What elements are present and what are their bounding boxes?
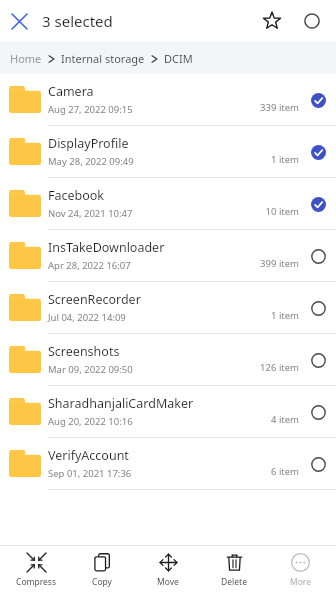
button[interactable]: Delete bbox=[204, 546, 264, 595]
staticText: May 28, 2022 09:49 bbox=[48, 155, 134, 168]
button[interactable]: Not selected bbox=[303, 345, 333, 375]
staticText: 126 item bbox=[260, 361, 299, 374]
button[interactable]: Select all bbox=[292, 1, 332, 41]
staticText: Compress bbox=[16, 576, 56, 588]
staticText: Apr 28, 2022 16:07 bbox=[48, 259, 131, 272]
staticText: VerifyAccount bbox=[48, 447, 129, 464]
button[interactable]: Not selected bbox=[303, 397, 333, 427]
staticText: 6 item bbox=[270, 465, 299, 478]
staticText: 1 item bbox=[270, 309, 299, 322]
button[interactable]: SharadhanjaliCardMaker bbox=[0, 386, 336, 437]
button[interactable]: Not selected bbox=[303, 241, 333, 271]
staticText: Delete bbox=[221, 576, 247, 588]
staticText: ScreenRecorder bbox=[48, 291, 141, 308]
staticText: 339 item bbox=[260, 101, 299, 114]
staticText: Move bbox=[157, 576, 179, 588]
button[interactable]: ScreenRecorder bbox=[0, 282, 336, 333]
button[interactable]: Facebook bbox=[0, 178, 336, 229]
button[interactable]: Selected bbox=[303, 137, 333, 167]
staticText: Facebook bbox=[48, 187, 105, 204]
button[interactable]: Selected bbox=[303, 85, 333, 115]
staticText: Mar 09, 2022 09:50 bbox=[48, 363, 133, 376]
button[interactable]: Compress bbox=[6, 546, 66, 595]
staticText: DCIM bbox=[164, 51, 193, 66]
staticText: 399 item bbox=[260, 257, 299, 270]
staticText: DisplayProfile bbox=[48, 135, 129, 152]
button[interactable]: Internal storage bbox=[61, 51, 145, 66]
staticText: Screenshots bbox=[48, 343, 120, 360]
button[interactable]: More bbox=[270, 546, 330, 595]
button[interactable]: Not selected bbox=[303, 449, 333, 479]
staticText: Sep 01, 2021 17:36 bbox=[48, 467, 132, 480]
button[interactable]: VerifyAccount bbox=[0, 438, 336, 489]
staticText: Camera bbox=[48, 83, 94, 100]
staticText: SharadhanjaliCardMaker bbox=[48, 395, 194, 412]
staticText: Internal storage bbox=[61, 51, 145, 66]
staticText: 3 selected bbox=[42, 11, 113, 31]
button[interactable]: Selected bbox=[303, 189, 333, 219]
staticText: Copy bbox=[92, 576, 112, 588]
button[interactable]: Favorite bbox=[252, 1, 292, 41]
staticText: 10 item bbox=[265, 205, 299, 218]
staticText: Aug 27, 2022 09:15 bbox=[48, 103, 133, 116]
button[interactable]: DisplayProfile bbox=[0, 126, 336, 177]
staticText: InsTakeDownloader bbox=[48, 239, 165, 256]
staticText: Home bbox=[10, 51, 42, 66]
button[interactable]: Home bbox=[10, 51, 42, 66]
staticText: More bbox=[290, 576, 311, 588]
button[interactable]: Close selection bbox=[0, 2, 38, 40]
button[interactable]: InsTakeDownloader bbox=[0, 230, 336, 281]
button[interactable]: Move bbox=[138, 546, 198, 595]
button[interactable]: Camera bbox=[0, 74, 336, 125]
button[interactable]: Copy bbox=[72, 546, 132, 595]
button[interactable]: Not selected bbox=[303, 293, 333, 323]
staticText: Aug 20, 2022 10:16 bbox=[48, 415, 133, 428]
button[interactable]: Screenshots bbox=[0, 334, 336, 385]
staticText: Nov 24, 2021 10:47 bbox=[48, 207, 133, 220]
staticText: 1 item bbox=[270, 153, 299, 166]
staticText: 4 item bbox=[270, 413, 299, 426]
button[interactable]: DCIM bbox=[164, 51, 193, 66]
staticText: Jul 04, 2022 14:09 bbox=[48, 311, 126, 324]
